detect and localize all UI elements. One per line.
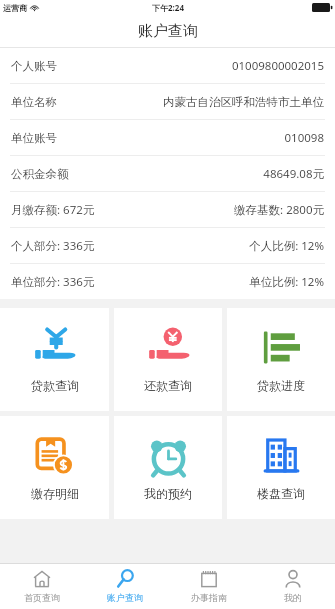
staticText: 个人比例: 12% xyxy=(249,238,324,254)
staticText: 贷款进度 xyxy=(257,378,305,393)
button[interactable]: 单位名称 xyxy=(0,84,335,119)
button[interactable]: 首页查询 xyxy=(0,564,83,609)
other: 贷款进度 xyxy=(260,326,303,369)
staticText: 账户查询 xyxy=(138,22,198,41)
staticText: 办事指南 xyxy=(191,592,227,603)
staticText: 单位名称 xyxy=(11,95,57,109)
staticText: 我的预约 xyxy=(144,486,192,501)
staticText: 运营商 xyxy=(3,3,27,13)
staticText: 公积金余额 xyxy=(11,167,69,181)
button[interactable]: 贷款进度 xyxy=(227,308,335,411)
other: 我的预约 xyxy=(147,434,190,477)
staticText: 单位账号 xyxy=(11,131,57,145)
other: 楼盘查询 xyxy=(260,434,303,477)
staticText: 个人账号 xyxy=(11,59,57,73)
staticText: 010098 xyxy=(284,130,324,146)
button[interactable]: 办事指南 xyxy=(167,564,251,609)
button[interactable]: 账户查询 xyxy=(83,564,167,609)
staticText: 账户查询 xyxy=(107,592,143,603)
button[interactable]: 我的 xyxy=(251,564,335,609)
staticText: 我的 xyxy=(284,592,302,603)
staticText: 缴存明细 xyxy=(31,486,79,501)
staticText: 48649.08元 xyxy=(263,166,324,182)
staticText: 贷款查询 xyxy=(31,378,79,393)
staticText: 单位部分: 336元 xyxy=(11,274,95,290)
button[interactable]: 公积金余额 xyxy=(0,156,335,191)
button[interactable]: 单位账号 xyxy=(0,120,335,155)
button[interactable]: 单位部分: 336元 xyxy=(0,264,335,299)
button[interactable]: 还款查询 xyxy=(114,308,222,411)
staticText: 月缴存额: 672元 xyxy=(11,202,95,218)
staticText: 还款查询 xyxy=(144,378,192,393)
button[interactable]: 个人部分: 336元 xyxy=(0,228,335,263)
staticText: 01009800002015 xyxy=(231,58,324,74)
staticText: 楼盘查询 xyxy=(257,486,305,501)
staticText: 首页查询 xyxy=(24,592,60,603)
staticText: 单位比例: 12% xyxy=(249,274,324,290)
button[interactable]: 月缴存额: 672元 xyxy=(0,192,335,227)
other: 贷款查询 xyxy=(33,326,76,369)
staticText: 个人部分: 336元 xyxy=(11,238,95,254)
staticText: 内蒙古自治区呼和浩特市土单位 xyxy=(163,95,324,109)
staticText: 缴存基数: 2800元 xyxy=(234,202,324,218)
button[interactable]: 贷款查询 xyxy=(0,308,109,411)
button[interactable]: 缴存明细 xyxy=(0,416,109,519)
staticText: 下午2:24 xyxy=(152,2,184,13)
other: 缴存明细 xyxy=(33,434,76,477)
button[interactable]: 楼盘查询 xyxy=(227,416,335,519)
other: 还款查询 xyxy=(147,326,190,369)
button[interactable]: 个人账号 xyxy=(0,48,335,83)
button[interactable]: 我的预约 xyxy=(114,416,222,519)
